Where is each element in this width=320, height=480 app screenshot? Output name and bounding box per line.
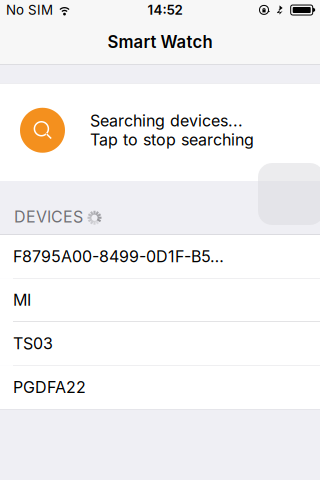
staticText: 14:52 [147,2,182,18]
staticText: TS03 [13,334,53,353]
button[interactable]: F8795A00-8499-0D1F-B5… [0,235,320,278]
button[interactable]: MI [0,278,320,322]
button[interactable]: Searching devices... [0,83,320,181]
staticText: F8795A00-8499-0D1F-B5… [13,247,224,266]
staticText: Smart Watch [107,32,212,52]
staticText: Searching devices... [90,111,243,130]
button[interactable]: TS03 [0,322,320,365]
staticText: No SIM [6,2,53,18]
button[interactable]: PGDFA22 [0,365,320,409]
staticText: MI [13,290,31,310]
staticText: PGDFA22 [13,378,86,397]
staticText: DEVICES [14,207,83,226]
staticText: Tap to stop searching [90,130,254,149]
